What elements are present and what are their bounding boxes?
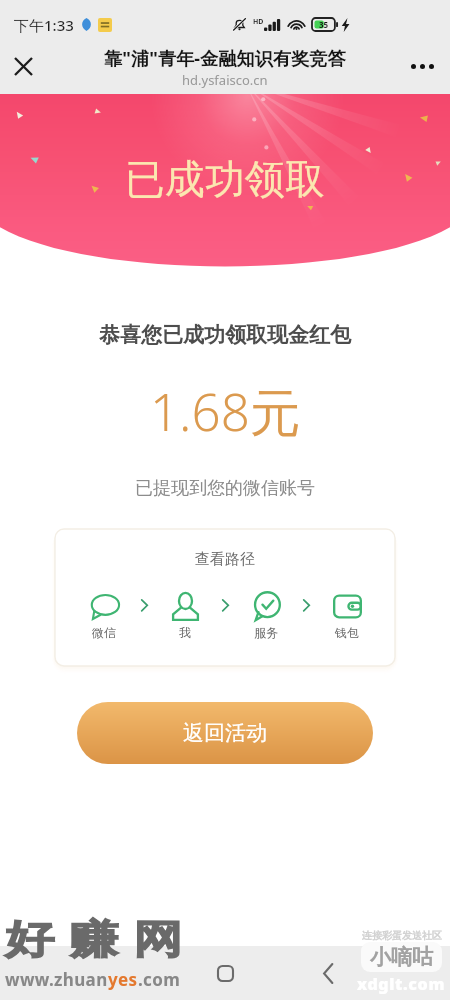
staticText: 我 xyxy=(179,625,191,640)
staticText: HD xyxy=(253,17,264,27)
staticText: yes xyxy=(108,968,138,991)
staticText: 小嘀咕 xyxy=(370,944,433,970)
button[interactable]: Recents xyxy=(201,949,249,997)
staticText: 1.68元 xyxy=(150,376,301,446)
staticText: 查看路径 xyxy=(195,550,255,569)
staticText: 返回活动 xyxy=(183,720,267,746)
staticText: 钱包 xyxy=(335,625,359,640)
staticText: 35 xyxy=(319,19,329,30)
staticText: 连接彩蛋发送社区 xyxy=(362,929,442,942)
staticText: 下午1:33 xyxy=(14,15,74,35)
button[interactable]: Back xyxy=(304,949,352,997)
staticText: 已提现到您的微信账号 xyxy=(135,477,315,500)
button[interactable]: 我 xyxy=(162,589,208,640)
button[interactable]: More options xyxy=(394,44,450,89)
button[interactable]: Close xyxy=(0,44,46,89)
button[interactable]: 钱包 xyxy=(324,589,370,640)
button[interactable]: 返回活动 xyxy=(77,702,373,764)
staticText: .com xyxy=(138,968,181,991)
staticText: hd.ysfaisco.cn xyxy=(182,71,268,89)
staticText: 恭喜您已成功领取现金红包 xyxy=(99,322,351,348)
staticText: 好赚网 xyxy=(5,915,198,964)
staticText: 微信 xyxy=(92,625,116,640)
staticText: 靠"浦"青年-金融知识有奖竞答 xyxy=(104,46,346,71)
staticText: 服务 xyxy=(254,625,278,640)
staticText: www.zhuan xyxy=(5,968,108,991)
button[interactable]: 微信 xyxy=(81,589,127,640)
button[interactable]: 服务 xyxy=(243,589,289,640)
staticText: 已成功领取 xyxy=(125,154,325,204)
staticText: xdglt.com xyxy=(357,973,446,995)
